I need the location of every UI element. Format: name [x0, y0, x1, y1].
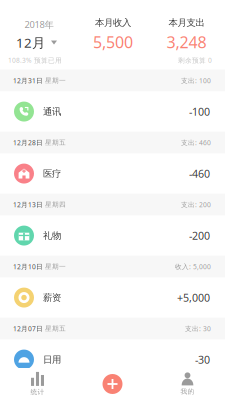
button[interactable]: 我的 [150, 368, 225, 400]
button[interactable]: 日用 [0, 340, 225, 380]
staticText: 支出: 30 [185, 324, 211, 333]
staticText: 12月28日 [13, 138, 43, 147]
staticText: 支出: 100 [181, 76, 211, 85]
staticText: 3,248 [166, 31, 206, 53]
staticText: 星期五 [43, 138, 66, 147]
staticText: -460 [189, 166, 210, 181]
staticText: 日用 [43, 354, 61, 365]
staticText: 统计 [30, 388, 44, 396]
staticText: 星期四 [43, 200, 66, 209]
staticText: 支出: 200 [181, 200, 211, 209]
staticText: 12月10日 [13, 262, 43, 271]
staticText: 星期一 [43, 262, 66, 271]
staticText: -200 [189, 228, 210, 243]
button[interactable]: 薪资 [0, 278, 225, 318]
staticText: 星期五 [43, 324, 66, 333]
staticText: 剩余预算 0 [178, 56, 212, 65]
staticText: 12月31日 [13, 76, 43, 85]
staticText: 医疗 [43, 168, 61, 179]
staticText: 我的 [180, 387, 194, 396]
button[interactable]: Add [75, 368, 150, 400]
staticText: 5,500 [93, 31, 133, 53]
staticText: 12月07日 [13, 324, 43, 333]
staticText: 通讯 [43, 106, 61, 117]
staticText: 本月收入 [95, 17, 131, 28]
button[interactable]: 2018年 [2, 18, 76, 51]
staticText: 12月13日 [13, 200, 43, 209]
staticText: 108.3% 预算已用 [8, 56, 62, 65]
staticText: 薪资 [43, 292, 61, 303]
staticText: +5,000 [177, 290, 210, 305]
staticText: -100 [189, 104, 210, 119]
button[interactable]: 礼物 [0, 216, 225, 256]
staticText: 12月 [16, 34, 45, 51]
staticText: 支出: 460 [181, 138, 211, 147]
button[interactable]: 通讯 [0, 92, 225, 132]
button[interactable]: 医疗 [0, 154, 225, 194]
staticText: 收入: 5,000 [175, 262, 211, 271]
staticText: -30 [195, 352, 210, 367]
button[interactable]: 统计 [0, 368, 75, 400]
staticText: 本月支出 [168, 17, 204, 28]
staticText: 2018年 [24, 18, 53, 31]
staticText: 星期一 [43, 76, 66, 85]
staticText: 礼物 [43, 230, 61, 241]
